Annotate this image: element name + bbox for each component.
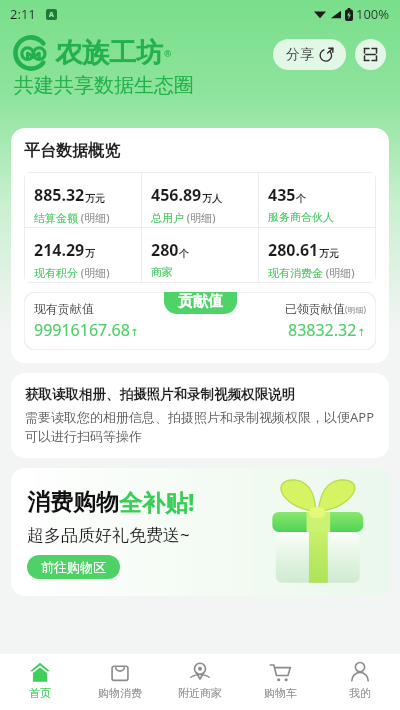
button[interactable]: 现有贡献值	[34, 301, 200, 341]
staticText: 分享	[286, 46, 314, 64]
staticText: 万元	[319, 247, 339, 260]
staticText: 83832.32	[288, 319, 357, 341]
staticText: 农族工坊	[55, 36, 163, 70]
staticText: 现有贡献值	[34, 301, 94, 316]
staticText: 购物车	[264, 686, 297, 700]
staticText: 个	[296, 192, 306, 205]
button[interactable]: 280	[142, 228, 258, 282]
staticText: 全补贴!	[119, 486, 195, 517]
staticText: 结算金额	[34, 211, 78, 225]
staticText: 280	[151, 239, 179, 261]
button[interactable]: 购物车	[240, 654, 320, 710]
staticText: 2:11	[10, 5, 36, 23]
staticText: 前往购物区	[41, 559, 106, 575]
button[interactable]: 前往购物区	[27, 555, 120, 579]
staticText: 个	[179, 247, 189, 260]
button[interactable]: 已领贡献值	[200, 301, 366, 341]
staticText: 万元	[85, 192, 105, 205]
staticText: 平台数据概览	[24, 141, 120, 161]
button[interactable]: 首页	[0, 654, 80, 710]
staticText: ↑	[357, 327, 366, 339]
staticText: 附近商家	[178, 686, 222, 700]
staticText: 280.61	[268, 239, 319, 261]
staticText: ↑	[130, 327, 139, 339]
button[interactable]: 885.32	[25, 173, 141, 227]
staticText: 获取读取相册、拍摄照片和录制视频权限说明	[25, 386, 295, 403]
staticText: 购物消费	[98, 686, 142, 700]
staticText: 首页	[29, 686, 51, 700]
staticText: (明细)	[323, 265, 355, 280]
staticText: 服务商合伙人	[268, 210, 334, 224]
staticText: 总用户	[151, 211, 184, 225]
button[interactable]: 我的	[320, 654, 400, 710]
staticText: 消费购物	[27, 488, 119, 517]
staticText: 435	[268, 184, 296, 206]
button[interactable]: 购物消费	[80, 654, 160, 710]
staticText: 共建共享数据生态圈	[14, 73, 194, 98]
staticText: 现有消费金	[268, 266, 323, 280]
staticText: 超多品质好礼免费送~	[27, 523, 190, 546]
button[interactable]: 附近商家	[160, 654, 240, 710]
staticText: 99916167.68	[34, 319, 130, 341]
button[interactable]: 获取读取相册、拍摄照片和录制视频权限说明	[11, 373, 389, 458]
staticText: (明细)	[184, 210, 216, 225]
staticText: 万	[85, 247, 95, 260]
staticText: 885.32	[34, 184, 85, 206]
staticText: 214.29	[34, 239, 85, 261]
staticText: (明细)	[78, 210, 110, 225]
staticText: 现有积分	[34, 266, 78, 280]
button[interactable]: 456.89	[142, 173, 258, 227]
button[interactable]: 扫一扫	[355, 39, 386, 70]
button[interactable]: 280.61	[259, 228, 375, 282]
staticText: ®	[164, 47, 172, 59]
staticText: 100%	[356, 5, 390, 23]
button[interactable]: 分享	[273, 39, 346, 70]
staticText: A	[49, 10, 54, 20]
staticText: 已领贡献值	[285, 301, 345, 316]
staticText: (明细)	[78, 265, 110, 280]
staticText: 贡献值	[178, 292, 223, 311]
staticText: 我的	[349, 686, 371, 700]
button[interactable]: 消费购物	[11, 468, 389, 596]
staticText: (明细)	[345, 304, 366, 315]
staticText: 商家	[151, 265, 173, 279]
button[interactable]: 贡献值	[164, 292, 237, 314]
staticText: 需要读取您的相册信息、拍摄照片和录制视频权限，以便APP可以进行扫码等操作	[25, 408, 375, 445]
button[interactable]: 214.29	[25, 228, 141, 282]
staticText: 456.89	[151, 184, 202, 206]
button[interactable]: 435	[259, 173, 375, 227]
staticText: 万人	[202, 192, 222, 205]
